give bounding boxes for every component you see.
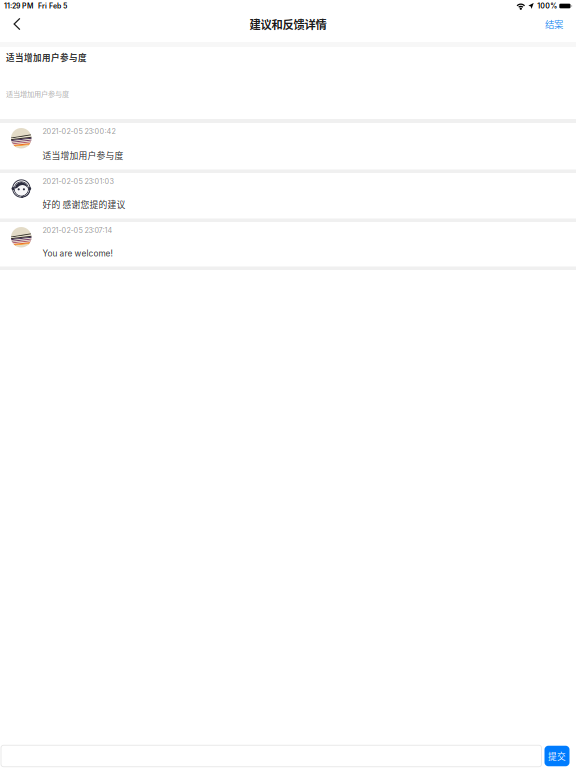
button[interactable]: Back	[4, 12, 30, 36]
button[interactable]: 结案	[538, 12, 570, 36]
button[interactable]: 2021-02-05 23:00:42	[0, 123, 576, 169]
button[interactable]: Message input	[1, 745, 541, 767]
staticText: 适当增加用户参与度	[6, 51, 87, 63]
staticText: 2021-02-05 23:00:42	[42, 127, 115, 136]
staticText: You are welcome!	[42, 248, 112, 258]
button[interactable]: 提交	[544, 746, 569, 766]
staticText: 好的 感谢您提的建议	[42, 198, 125, 210]
staticText: 11:29 PM	[4, 2, 33, 10]
staticText: 结案	[545, 17, 563, 31]
button[interactable]: 2021-02-05 23:01:03	[0, 173, 576, 218]
staticText: 100%	[537, 2, 557, 10]
staticText: 2021-02-05 23:01:03	[42, 177, 113, 186]
staticText: 建议和反馈详情	[249, 16, 326, 32]
staticText: 提交	[548, 750, 566, 762]
staticText: 适当增加用户参与度	[6, 88, 69, 99]
button[interactable]: 2021-02-05 23:07:14	[0, 222, 576, 266]
staticText: Fri Feb 5	[38, 2, 67, 10]
staticText: 适当增加用户参与度	[42, 149, 123, 161]
staticText: 2021-02-05 23:07:14	[42, 226, 112, 235]
